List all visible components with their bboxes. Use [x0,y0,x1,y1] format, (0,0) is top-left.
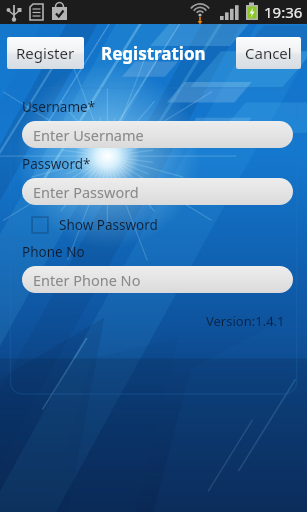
button[interactable]: Enter Password [22,178,293,205]
staticText: Registration [101,42,206,65]
staticText: Show Password [59,216,158,234]
other: Show Password checkbox [31,216,49,234]
staticText: Enter Username [33,125,144,145]
button[interactable]: Enter Username [22,121,293,148]
staticText: Enter Password [33,182,139,202]
staticText: Register [16,43,75,63]
staticText: Cancel [245,43,292,63]
staticText: Phone No [22,243,85,261]
button[interactable]: Enter Phone No [22,266,293,293]
button[interactable]: Show Password checkbox [31,216,162,234]
staticText: Username* [22,98,96,116]
button[interactable]: Register [7,37,84,69]
staticText: Password* [22,155,91,173]
staticText: 19:36 [264,2,303,22]
staticText: Version:1.4.1 [206,312,285,330]
button[interactable]: Cancel [236,37,301,69]
staticText: Enter Phone No [33,270,141,290]
